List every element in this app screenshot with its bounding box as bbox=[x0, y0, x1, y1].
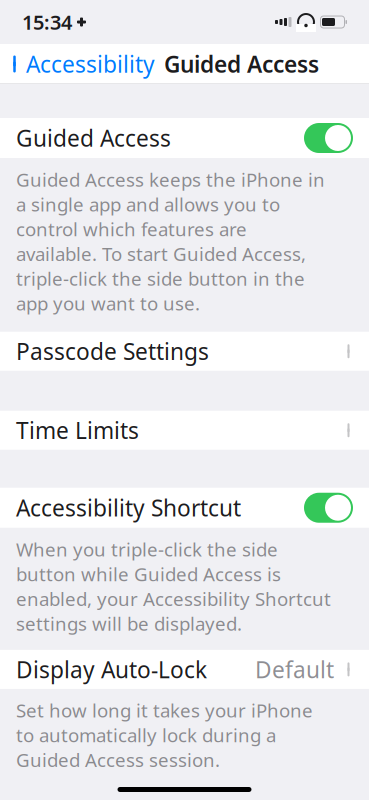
button[interactable]: Accessibility bbox=[0, 43, 155, 85]
staticText: 15:34 bbox=[22, 9, 72, 35]
button[interactable]: Accessibility Shortcut bbox=[0, 488, 369, 528]
button[interactable]: Passcode Settings bbox=[0, 332, 369, 371]
staticText: Guided Access bbox=[164, 49, 319, 79]
button[interactable]: Display Auto-Lock bbox=[0, 650, 369, 689]
staticText: Guided Access bbox=[16, 123, 171, 153]
staticText: Set how long it takes your iPhone to aut… bbox=[16, 698, 313, 772]
staticText: Default bbox=[255, 654, 334, 684]
staticText: Display Auto-Lock bbox=[16, 654, 207, 684]
button[interactable]: Time Limits bbox=[0, 411, 369, 450]
staticText: Accessibility Shortcut bbox=[16, 493, 241, 523]
button[interactable]: Guided Access bbox=[0, 118, 369, 158]
staticText: Time Limits bbox=[16, 415, 139, 445]
staticText: Passcode Settings bbox=[16, 336, 209, 366]
staticText: Guided Access keeps the iPhone in a sing… bbox=[16, 167, 325, 316]
staticText: When you triple-click the side button wh… bbox=[16, 537, 331, 636]
staticText: Accessibility bbox=[26, 49, 155, 79]
